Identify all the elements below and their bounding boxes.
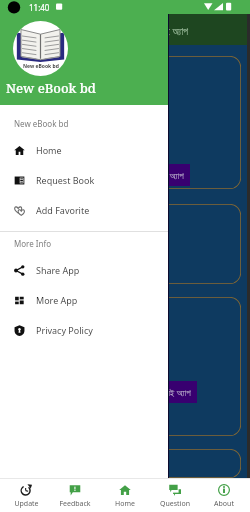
button[interactable] (8, 449, 241, 478)
button[interactable]: Question (151, 482, 199, 509)
button[interactable]: নতুন বই অ্যাপ (8, 56, 241, 189)
button[interactable]: Share App (0, 255, 169, 285)
staticText: New eBook bd (14, 118, 69, 129)
staticText: About (214, 499, 234, 509)
button[interactable]: নতুন বই অ্যাপ (8, 297, 241, 436)
button[interactable]: Add Favorite (0, 195, 169, 225)
button[interactable] (8, 204, 241, 284)
button[interactable]: Home (101, 482, 149, 509)
staticText: Home (115, 499, 135, 509)
staticText: More App (36, 294, 78, 306)
staticText: Question (160, 499, 190, 509)
staticText: Request Book (36, 174, 95, 186)
button[interactable]: Home (0, 135, 169, 165)
staticText: 11:40 (29, 2, 50, 13)
button[interactable]: নতুন বই অ্যাপ (14, 381, 197, 403)
staticText: Update (14, 499, 39, 509)
button[interactable]: More App (0, 285, 169, 315)
button[interactable]: Update (2, 482, 50, 509)
staticText: New eBook bd (23, 63, 59, 70)
button[interactable]: Privacy Policy (0, 315, 169, 345)
staticText: Privacy Policy (36, 324, 93, 336)
staticText: Home (36, 144, 62, 156)
staticText: More Info (14, 238, 52, 249)
staticText: নতুন বই অ্যাপ (144, 169, 184, 181)
staticText: নতুন বই অ্যাপ (144, 24, 189, 38)
button[interactable]: Request Book (0, 165, 169, 195)
button[interactable]: নতুন বই অ্যাপ (14, 164, 190, 186)
button[interactable]: Feedback (51, 482, 99, 509)
staticText: Add Favorite (36, 204, 90, 216)
staticText: Feedback (59, 499, 91, 509)
staticText: New eBook bd (6, 79, 96, 97)
staticText: Share App (36, 264, 80, 276)
button[interactable]: About (200, 482, 248, 509)
staticText: নতুন বই অ্যাপ (151, 386, 191, 398)
